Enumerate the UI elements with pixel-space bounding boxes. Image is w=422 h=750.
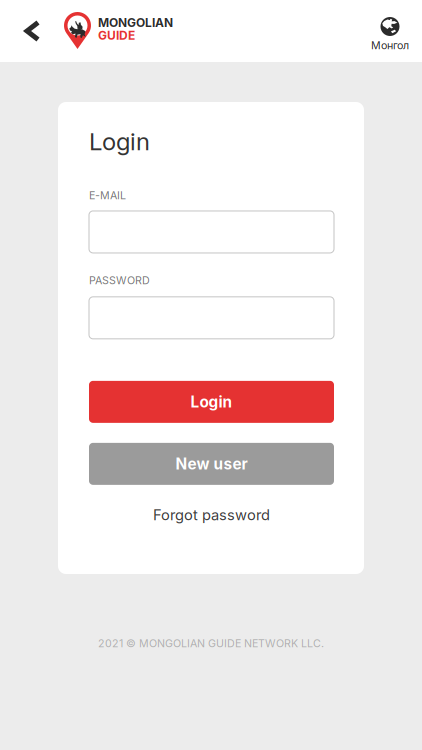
staticText: E-MAIL [89, 189, 126, 202]
button[interactable]: Back [0, 0, 64, 62]
staticText: 2021 © MONGOLIAN GUIDE NETWORK LLC. [98, 637, 324, 650]
staticText: Forgot password [153, 506, 270, 524]
staticText: Login [190, 393, 232, 411]
staticText: GUIDE [98, 28, 135, 42]
button[interactable]: Language [371, 0, 422, 62]
button[interactable]: Forgot password [89, 494, 334, 536]
button[interactable]: Login [89, 381, 334, 423]
staticText: New user [175, 455, 247, 473]
button[interactable]: New user [89, 443, 334, 485]
staticText: Login [89, 127, 150, 156]
staticText: PASSWORD [89, 274, 150, 287]
staticText: MONGOLIAN [98, 15, 173, 30]
staticText: Монгол [371, 39, 409, 52]
